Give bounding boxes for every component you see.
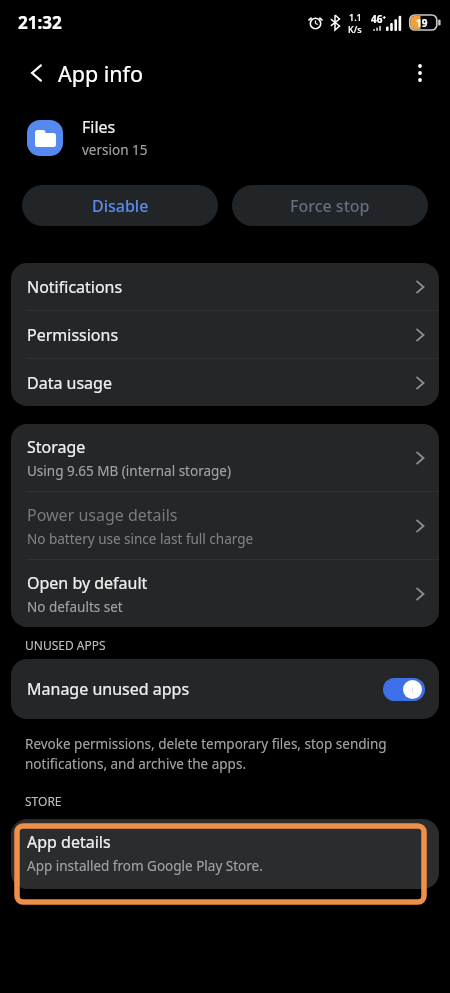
staticText: 21:32 [18,11,62,34]
staticText: App info [58,59,144,88]
button[interactable]: App details [11,819,439,889]
staticText: 46⁺ [371,12,387,26]
button[interactable]: Disable [22,185,218,226]
staticText: version 15 [82,141,148,159]
button[interactable]: Data usage [11,359,439,406]
staticText: App details [27,831,111,853]
button[interactable]: Open by default [11,560,439,627]
staticText: Open by default [27,572,148,594]
button[interactable]: Permissions [11,311,439,358]
staticText: 1.1 [349,11,362,23]
staticText: Power usage details [27,504,178,526]
button[interactable] [24,61,48,85]
staticText: App installed from Google Play Store. [27,857,263,875]
staticText: Using 9.65 MB (internal storage) [27,462,231,480]
button[interactable] [383,678,425,701]
staticText: No battery use since last full charge [27,530,254,548]
staticText: UNUSED APPS [25,637,106,653]
staticText: Notifications [27,276,123,298]
staticText: Permissions [27,324,119,346]
button[interactable]: Notifications [11,263,439,310]
button[interactable]: Power usage details [11,492,439,559]
staticText: Data usage [27,372,112,394]
staticText: 19 [416,16,428,30]
staticText: Revoke permissions, delete temporary fil… [25,735,387,773]
button[interactable] [402,55,438,91]
staticText: Manage unused apps [27,678,190,700]
button[interactable]: Force stop [232,185,428,226]
staticText: No defaults set [27,598,123,616]
staticText: Force stop [290,195,370,217]
staticText: Storage [27,436,86,458]
staticText: Files [82,116,116,138]
button[interactable]: Storage [11,424,439,491]
staticText: STORE [25,793,62,809]
button[interactable]: Manage unused apps [11,659,439,719]
staticText: K/s [348,23,362,35]
staticText: Disable [92,195,149,217]
